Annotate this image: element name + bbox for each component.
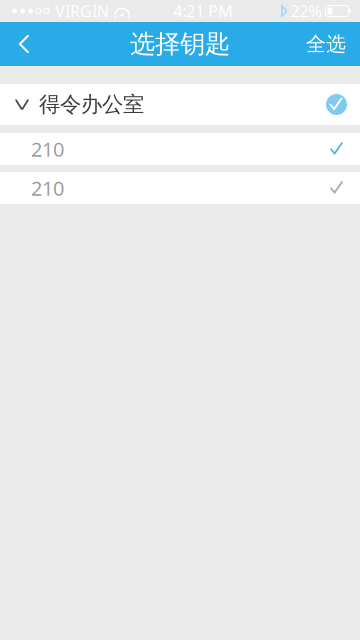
button[interactable]: 210 [0,133,360,165]
button[interactable]: 210 [0,172,360,204]
staticText: VIRGIN [55,0,109,22]
staticText: 22% [290,0,321,22]
button[interactable]: Back [0,22,48,66]
staticText: 选择钥匙 [130,28,230,59]
staticText: 210 [31,136,64,162]
button[interactable]: 全选 [292,22,360,66]
staticText: 4:21 PM [173,0,233,22]
button[interactable]: 得令办公室 [0,84,360,125]
staticText: 全选 [306,32,346,56]
staticText: 210 [31,175,64,201]
staticText: 得令办公室 [39,91,144,118]
